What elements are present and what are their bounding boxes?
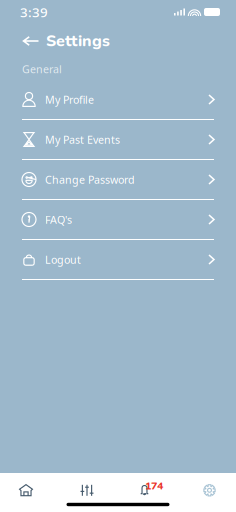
- button[interactable]: Back: [16, 27, 46, 55]
- staticText: Change Password: [45, 172, 135, 187]
- staticText: Settings: [46, 30, 110, 52]
- staticText: My Profile: [45, 92, 94, 107]
- button[interactable]: Logout: [0, 240, 236, 280]
- staticText: My Past Events: [45, 132, 120, 147]
- staticText: 174: [145, 479, 163, 493]
- button[interactable]: Change Password: [0, 160, 236, 200]
- button[interactable]: Notifications: [122, 473, 167, 503]
- button[interactable]: Settings: [167, 473, 236, 503]
- button[interactable]: My Past Events: [0, 120, 236, 160]
- staticText: 3:39: [20, 3, 48, 21]
- button[interactable]: Home: [0, 473, 52, 503]
- staticText: FAQ's: [45, 212, 72, 227]
- button[interactable]: Filters: [52, 473, 122, 503]
- staticText: Logout: [45, 252, 81, 267]
- staticText: General: [22, 62, 62, 76]
- button[interactable]: FAQ's: [0, 200, 236, 240]
- button[interactable]: My Profile: [0, 80, 236, 120]
